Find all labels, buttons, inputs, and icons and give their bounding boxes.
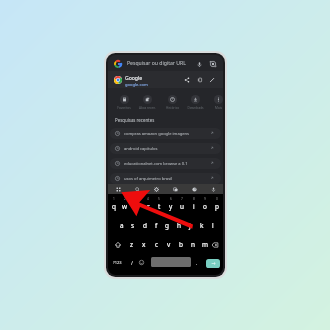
staticText: ?123 [113,260,122,265]
button[interactable]: Edit [207,75,217,85]
button[interactable]: m [200,239,210,250]
button[interactable]: u [177,201,187,212]
button[interactable]: Search [128,184,147,194]
staticText: 1 [113,197,115,201]
staticText: k [200,221,204,230]
staticText: Pesquisas recentes [115,117,155,123]
staticText: 8 [193,197,195,201]
button[interactable]: Favoritos [113,95,135,110]
button[interactable]: q [109,201,119,212]
button[interactable]: android capitulos [110,143,221,154]
button[interactable]: usos of arquimetro brasil [110,173,221,184]
staticText: Google [125,75,143,82]
button[interactable]: Stickers [166,184,185,194]
button[interactable]: Backspace [210,240,219,249]
staticText: t [158,202,161,211]
staticText: a [120,221,124,230]
button[interactable]: Copy link [195,75,205,85]
button[interactable]: Google Lens [208,59,218,69]
button[interactable]: Voice search [194,59,204,69]
button[interactable]: i [189,201,199,212]
button[interactable]: compras amazon google imagens [110,128,221,139]
staticText: h [177,221,181,230]
staticText: 9 [204,197,206,201]
staticText: j [189,221,191,230]
button[interactable]: Mais [207,95,223,110]
button[interactable]: w [120,201,130,212]
button[interactable]: Clipboard [108,184,128,194]
staticText: Mais [215,106,222,110]
button[interactable]: p [212,201,222,212]
staticText: u [180,202,184,211]
staticText: usos of arquimetro brasil [124,176,173,182]
button[interactable]: l [208,220,218,231]
button[interactable]: Settings [147,184,166,194]
staticText: Downloads [187,106,204,110]
staticText: s [131,221,135,230]
staticText: Pesquisar ou digitar URL [127,60,186,67]
button[interactable]: Abas recen. [136,95,158,110]
staticText: e [135,202,139,211]
staticText: 4 [147,197,149,201]
button[interactable]: Histórico [161,95,183,110]
button[interactable]: e [132,201,142,212]
button[interactable]: z [127,239,137,250]
staticText: Favoritos [117,106,131,110]
staticText: w [122,202,128,211]
staticText: 7 [181,197,183,201]
staticText: n [191,240,195,249]
staticText: l [212,221,214,230]
button[interactable]: y [166,201,176,212]
staticText: Histórico [166,106,179,110]
button[interactable]: Downloads [184,95,206,110]
staticText: educationalnet.com browse a 0.1 [124,161,188,167]
button[interactable]: s [128,220,138,231]
button[interactable]: x [139,239,149,250]
button[interactable]: n [188,239,198,250]
staticText: m [202,240,208,249]
button[interactable]: c [152,239,162,250]
staticText: android capitulos [124,146,158,152]
button[interactable]: a [117,220,127,231]
button[interactable]: Space [151,257,191,267]
staticText: compras amazon google imagens [124,131,190,137]
button[interactable]: g [162,220,172,231]
staticText: Abas recen. [139,106,156,110]
button[interactable]: Voice [204,184,223,194]
button[interactable]: Emoji [137,258,146,267]
staticText: d [143,221,147,230]
button[interactable]: ?123 [110,258,124,267]
staticText: / [131,259,133,266]
staticText: v [167,240,171,249]
staticText: . [196,259,198,266]
staticText: f [155,221,158,230]
button[interactable]: Pesquisar ou digitar URL [108,55,223,71]
button[interactable]: Themes [185,184,204,194]
staticText: y [169,202,173,211]
button[interactable]: Google [108,71,223,88]
button[interactable]: r [143,201,153,212]
button[interactable]: j [185,220,195,231]
staticText: g [165,221,169,230]
button[interactable]: Shift [113,240,122,249]
staticText: i [193,202,195,211]
button[interactable]: t [154,201,164,212]
button[interactable]: educationalnet.com browse a 0.1 [110,158,221,169]
button[interactable]: k [197,220,207,231]
button[interactable]: . [193,258,201,266]
button[interactable]: Enter [206,259,220,268]
button[interactable]: v [164,239,174,250]
staticText: x [142,240,146,249]
button[interactable]: Share [182,75,192,85]
button[interactable]: f [151,220,161,231]
button[interactable]: d [140,220,150,231]
staticText: 0 [216,197,218,201]
button[interactable]: b [176,239,186,250]
button[interactable]: o [200,201,210,212]
staticText: o [203,202,207,211]
staticText: c [155,240,159,249]
button[interactable]: h [174,220,184,231]
staticText: p [215,202,219,211]
button[interactable]: / [127,258,136,267]
